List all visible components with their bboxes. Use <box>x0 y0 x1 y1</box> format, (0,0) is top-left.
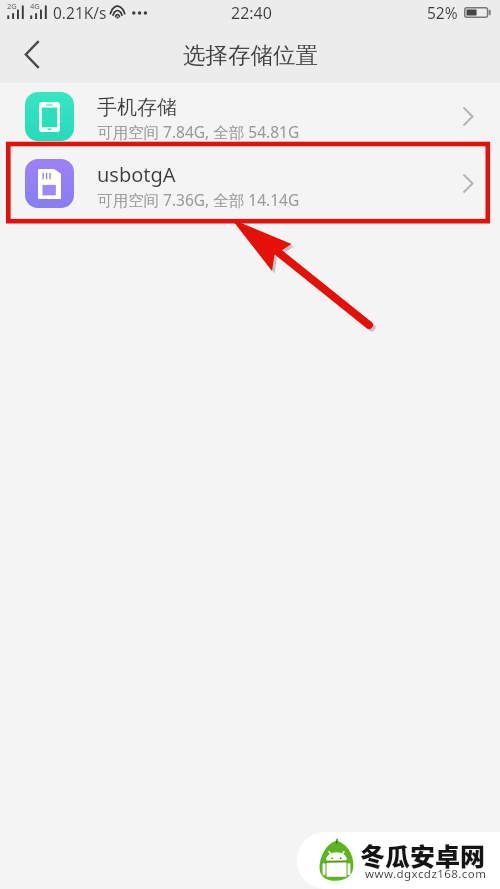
staticText: 选择存储位置 <box>183 41 318 69</box>
button[interactable]: 手机存储 <box>0 83 500 150</box>
staticText: usbotgA <box>97 161 176 188</box>
staticText: 冬瓜安卓网 <box>360 837 486 873</box>
staticText: 手机存储 <box>97 95 177 120</box>
staticText: 0.21K/s <box>53 2 107 23</box>
staticText: www.dgxcdz168.com <box>365 866 487 882</box>
staticText: 2G <box>7 1 17 11</box>
staticText: 可用空间 7.36G, 全部 14.14G <box>97 189 300 210</box>
staticText: 22:40 <box>231 2 272 24</box>
button[interactable]: usbotgA <box>0 150 500 217</box>
staticText: 可用空间 7.84G, 全部 54.81G <box>97 121 300 142</box>
staticText: 52% <box>427 2 458 23</box>
button[interactable]: Back <box>7 30 56 78</box>
staticText: 4G <box>30 1 40 11</box>
